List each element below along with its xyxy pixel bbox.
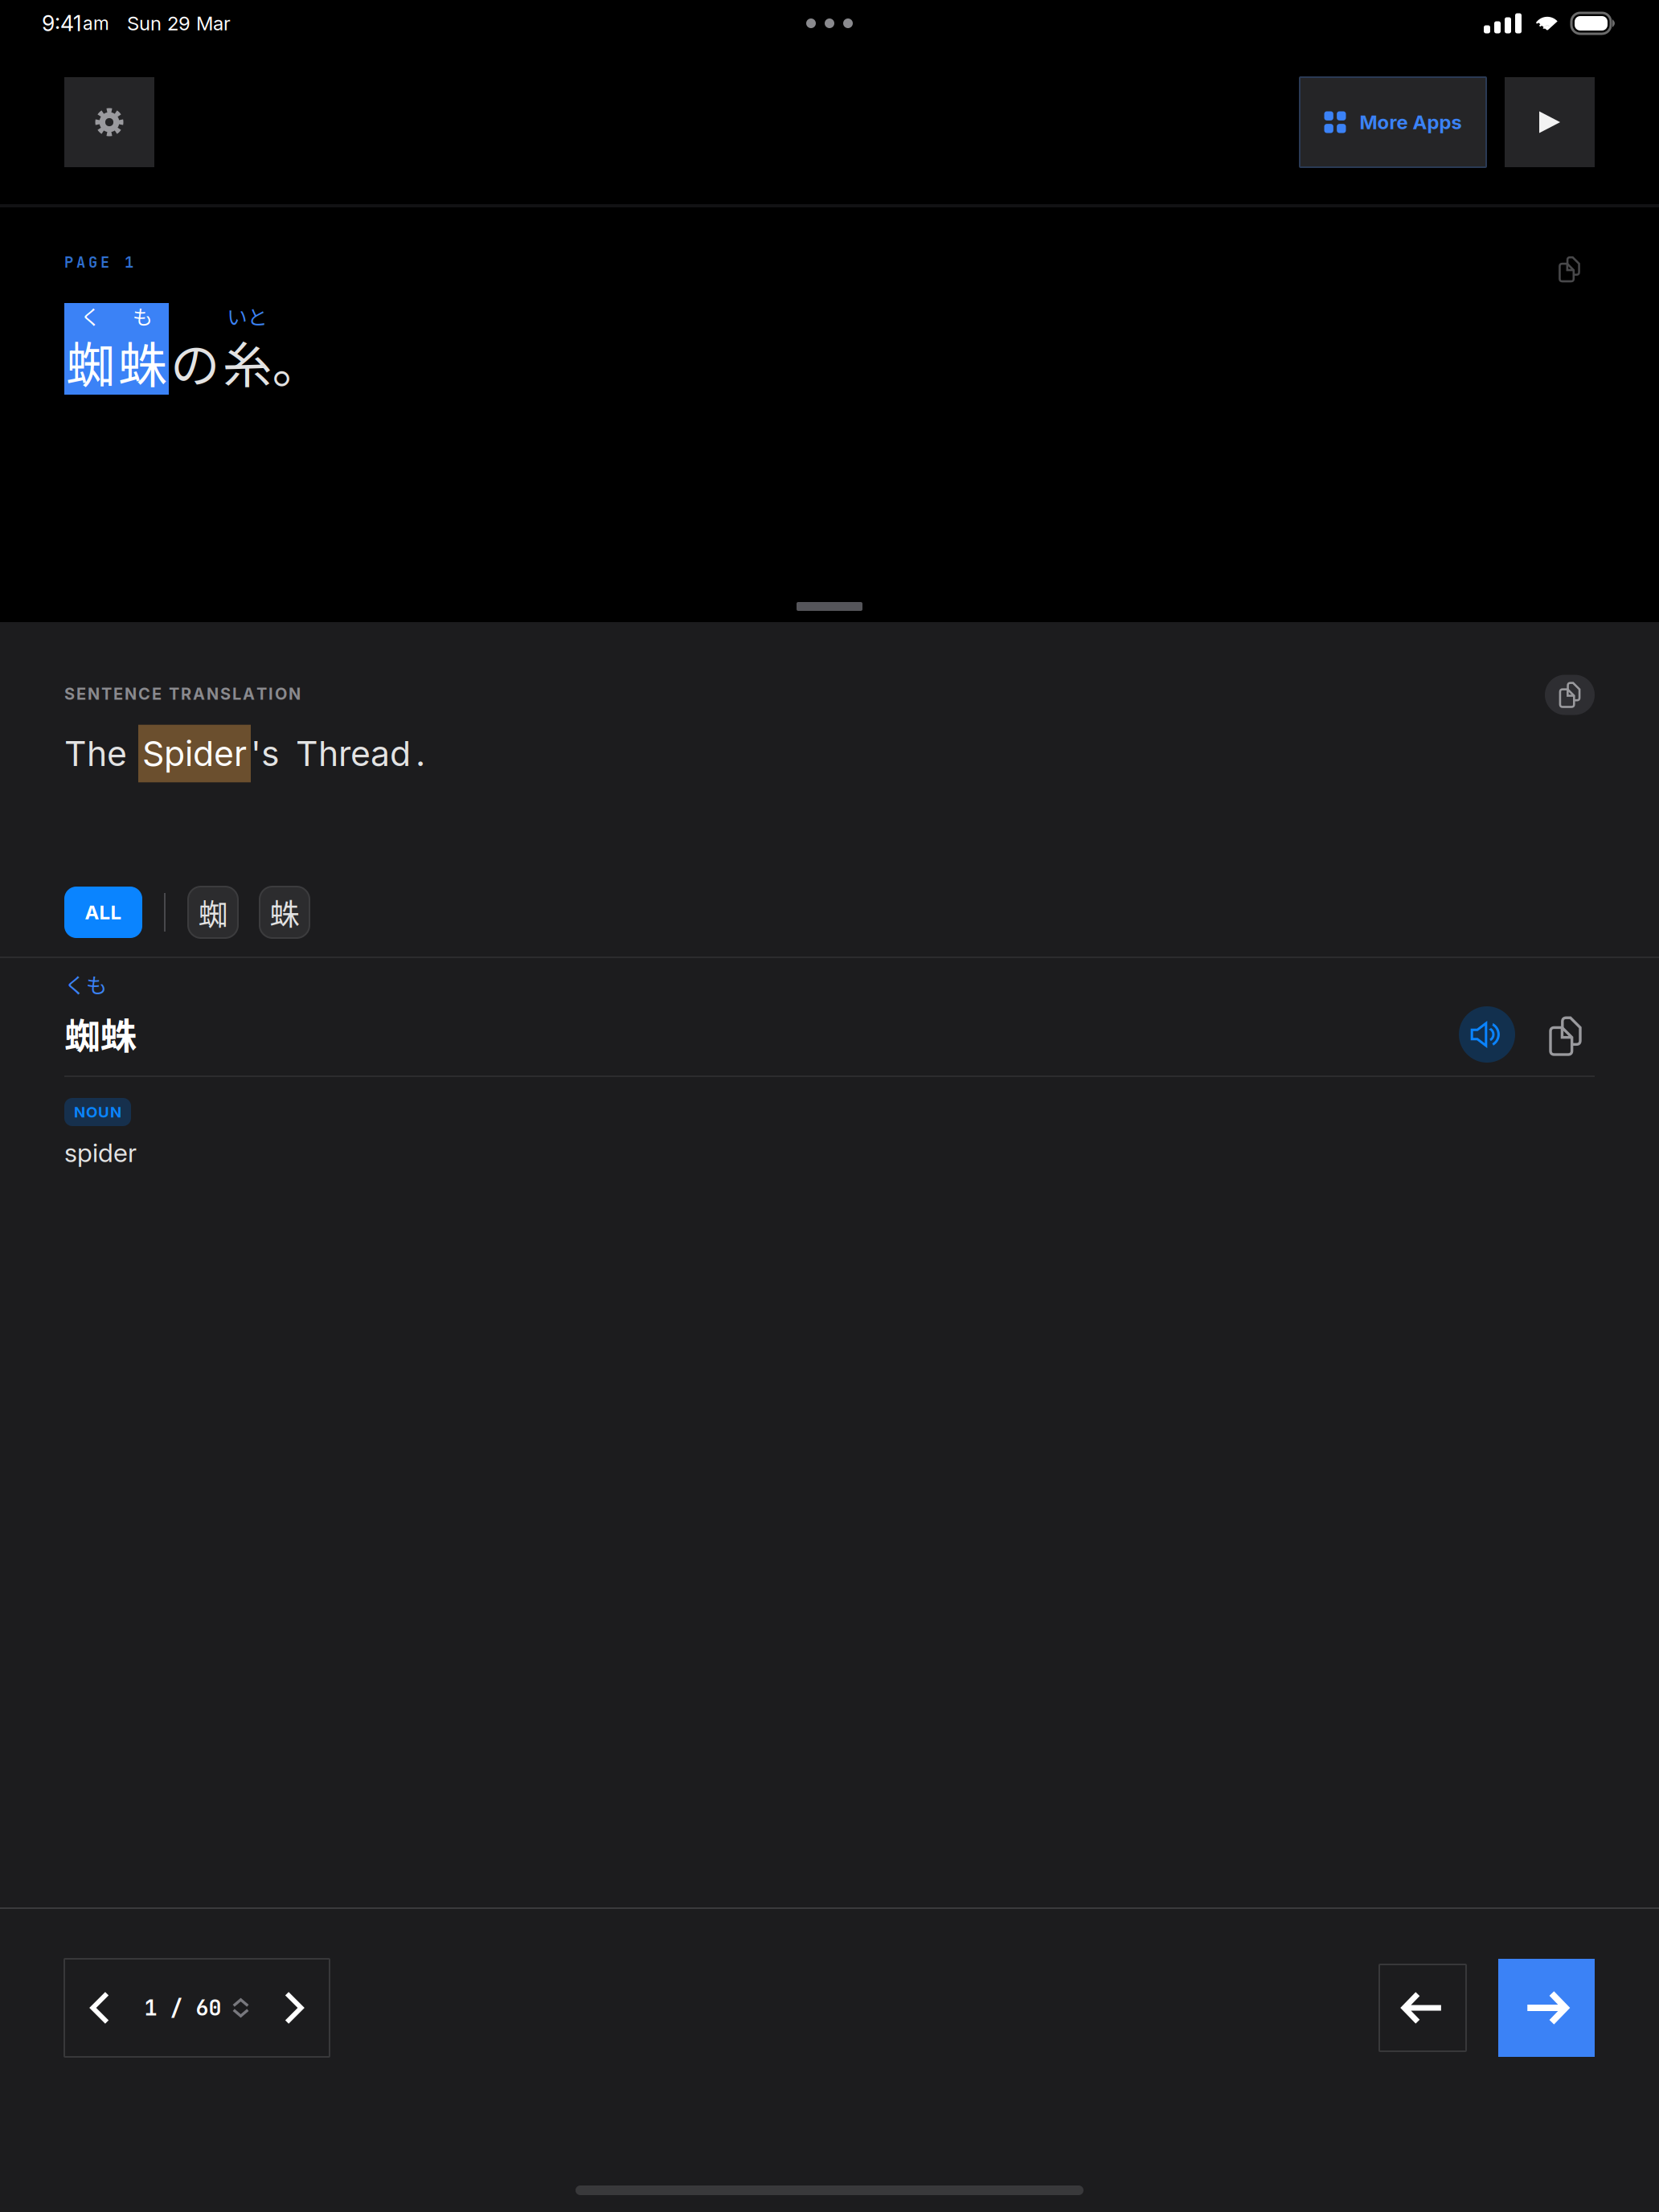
- staticText: ALL: [85, 901, 122, 924]
- button[interactable]: 蜘: [188, 887, 238, 938]
- staticText: 蜘: [66, 326, 115, 397]
- staticText: Sun 29 Mar: [127, 12, 231, 35]
- button[interactable]: Play pronunciation: [1459, 1006, 1515, 1063]
- staticText: 蛛: [118, 326, 167, 397]
- staticText: 9:41: [42, 10, 81, 36]
- button[interactable]: Next sentence: [1498, 1959, 1595, 2057]
- staticText: S E N T E N C E T R A N S L A T I O N: [64, 684, 301, 703]
- button[interactable]: Previous page: [71, 1960, 130, 2055]
- staticText: am: [83, 12, 109, 34]
- staticText: P A G E 1: [64, 252, 133, 272]
- button[interactable]: More Apps: [1300, 77, 1486, 167]
- button[interactable]: Copy translation: [1545, 675, 1595, 715]
- button[interactable]: Copy sentence: [1559, 257, 1579, 281]
- button[interactable]: 1 / 60: [144, 1960, 250, 2055]
- staticText: 。: [272, 326, 321, 397]
- button[interactable]: ALL: [64, 887, 142, 938]
- staticText: spider: [64, 1137, 137, 1168]
- staticText: N O U N: [74, 1103, 121, 1121]
- staticText: いと: [227, 301, 267, 331]
- button[interactable]: Play: [1505, 77, 1595, 167]
- staticText: も: [133, 301, 153, 331]
- staticText: 's: [251, 733, 280, 774]
- staticText: Thread: [296, 733, 411, 774]
- button[interactable]: Copy word: [1550, 1018, 1580, 1055]
- staticText: The: [64, 733, 127, 774]
- staticText: 蜘: [198, 891, 228, 934]
- staticText: の: [170, 326, 219, 397]
- staticText: 蜘蛛: [64, 1007, 137, 1060]
- staticText: .: [416, 733, 425, 774]
- button[interactable]: Previous sentence: [1379, 1964, 1466, 2051]
- staticText: Spider: [142, 733, 247, 774]
- staticText: 蛛: [270, 891, 299, 934]
- staticText: く: [80, 301, 100, 331]
- button[interactable]: 蛛: [260, 887, 309, 938]
- staticText: くも: [64, 968, 108, 999]
- staticText: More Apps: [1360, 111, 1462, 134]
- button[interactable]: Settings: [64, 77, 154, 167]
- staticText: 糸: [223, 326, 272, 397]
- staticText: 1 / 60: [144, 1994, 221, 2022]
- button[interactable]: Next page: [264, 1960, 323, 2055]
